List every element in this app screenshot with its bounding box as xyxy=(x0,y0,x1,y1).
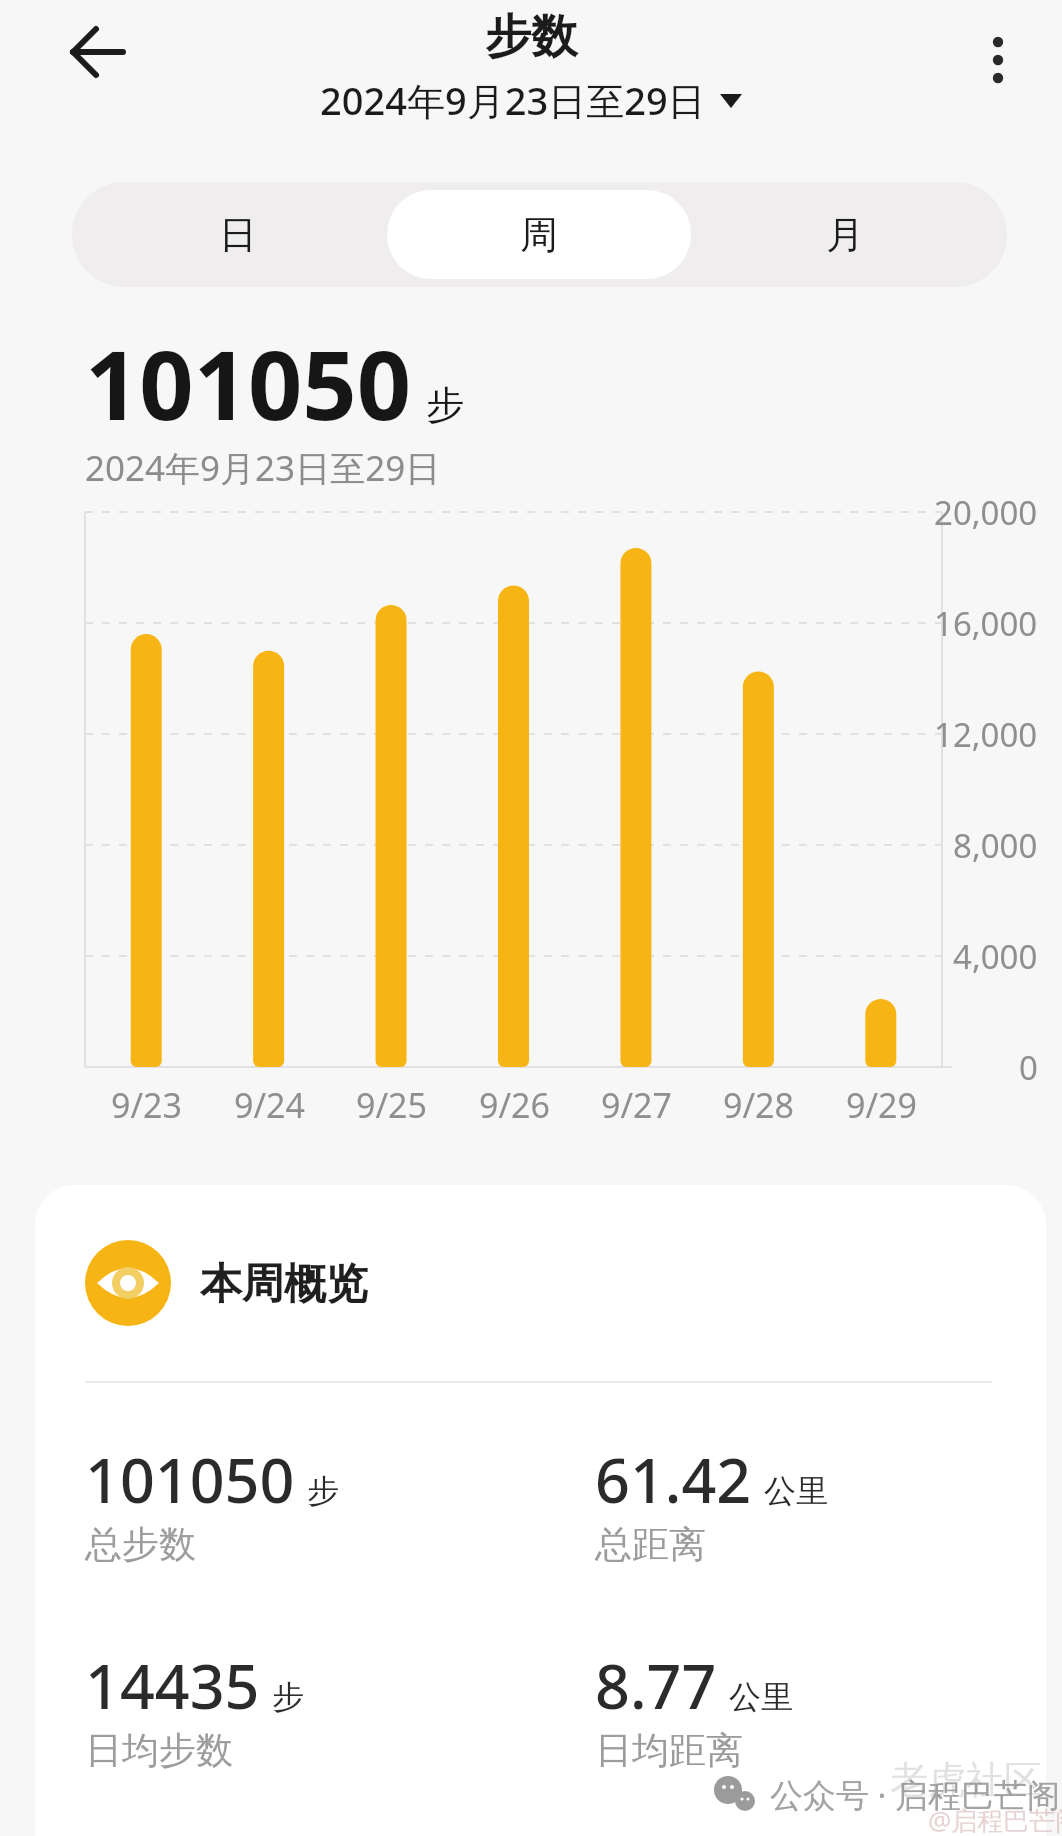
staticText: 公里 xyxy=(729,1677,793,1717)
staticText: 周 xyxy=(520,211,558,259)
staticText: 9/24 xyxy=(234,1082,305,1128)
staticText: 日均步数 xyxy=(85,1727,233,1774)
staticText: 步 xyxy=(272,1677,304,1717)
staticText: 8.77 xyxy=(595,1644,717,1727)
staticText: 9/25 xyxy=(356,1082,427,1128)
button[interactable]: 日 xyxy=(92,182,383,287)
staticText: 本周概览 xyxy=(200,1258,368,1311)
staticText: 公众号 · 启程巴芒阁 xyxy=(770,1772,1061,1817)
staticText: 9/29 xyxy=(846,1082,917,1128)
staticText: 9/28 xyxy=(723,1082,794,1128)
staticText: 步 xyxy=(426,381,464,429)
staticText: 2024年9月23日至29日 xyxy=(85,444,441,492)
button[interactable]: 2024年9月23日至29日 xyxy=(0,74,1062,126)
button[interactable] xyxy=(60,22,136,82)
staticText: 0 xyxy=(1019,1045,1038,1090)
button[interactable]: 月 xyxy=(695,182,995,287)
staticText: 4,000 xyxy=(953,934,1038,979)
staticText: 20,000 xyxy=(934,490,1038,535)
staticText: 101050 xyxy=(85,1438,295,1521)
staticText: 日均距离 xyxy=(595,1727,743,1774)
staticText: 总步数 xyxy=(85,1521,196,1568)
staticText: 公里 xyxy=(764,1471,828,1511)
staticText: 9/27 xyxy=(601,1082,672,1128)
staticText: 总距离 xyxy=(595,1521,706,1568)
staticText: 14435 xyxy=(85,1644,260,1727)
staticText: 101050 xyxy=(85,318,412,447)
staticText: 2024年9月23日至29日 xyxy=(320,74,706,126)
staticText: 12,000 xyxy=(934,712,1038,757)
staticText: 9/26 xyxy=(479,1082,550,1128)
staticText: 步 xyxy=(307,1471,339,1511)
staticText: 16,000 xyxy=(934,601,1038,646)
button[interactable]: 周 xyxy=(387,190,691,279)
staticText: 日 xyxy=(219,211,257,259)
staticText: 月 xyxy=(826,211,864,259)
staticText: 老虎社区 xyxy=(890,1756,1042,1804)
staticText: 步数 xyxy=(485,8,577,66)
staticText: @启程巴芒阁 xyxy=(928,1802,1062,1836)
staticText: 8,000 xyxy=(953,823,1038,868)
staticText: 61.42 xyxy=(595,1438,752,1521)
staticText: 9/23 xyxy=(111,1082,182,1128)
button[interactable] xyxy=(966,20,1030,100)
